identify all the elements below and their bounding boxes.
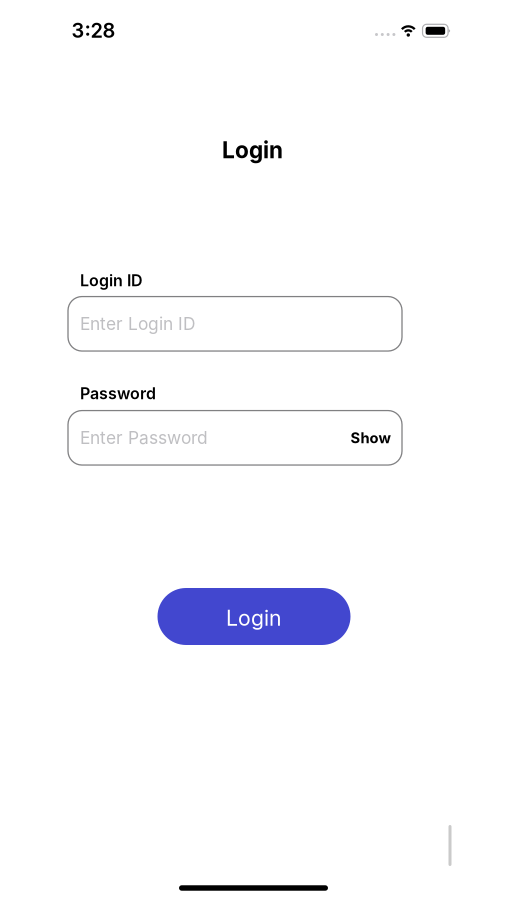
button[interactable]: Login: [157, 588, 350, 645]
button[interactable]: Enter Password: [68, 411, 402, 465]
staticText: Enter Login ID: [80, 314, 196, 334]
staticText: Enter Password: [80, 428, 208, 448]
staticText: Password: [80, 384, 156, 403]
staticText: Login: [226, 605, 282, 631]
button[interactable]: Enter Login ID: [68, 297, 402, 351]
staticText: 3:28: [71, 19, 115, 42]
button[interactable]: Show: [350, 429, 390, 446]
staticText: Show: [350, 429, 390, 446]
staticText: Login: [222, 137, 283, 163]
staticText: Login ID: [80, 271, 143, 290]
